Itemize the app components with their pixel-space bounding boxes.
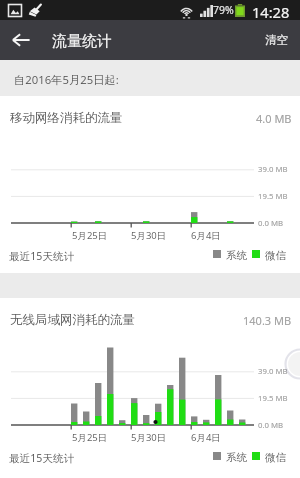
staticText: 微信 [265,249,287,262]
staticText: 流量统计 [52,32,112,51]
staticText: 自2016年5月25日起: [14,72,119,87]
staticText: 微信 [265,451,287,464]
staticText: 6月4日 [191,431,221,444]
staticText: 0.0 MB [258,420,284,431]
staticText: 5月25日 [72,431,108,444]
staticText: 4.0 MB [256,111,292,126]
staticText: 39.0 MB [258,164,288,175]
staticText: 5月30日 [131,431,167,444]
staticText: 39.0 MB [258,366,288,377]
staticText: 清空 [265,33,289,48]
staticText: 14:28 [252,2,290,22]
button[interactable]: Back [0,20,42,60]
staticText: 无线局域网消耗的流量 [10,312,135,328]
staticText: 最近15天统计 [9,451,75,465]
staticText: 5月25日 [72,229,108,242]
staticText: 移动网络消耗的流量 [10,110,123,126]
staticText: 79% [213,3,234,17]
staticText: 系统 [226,451,248,464]
staticText: 19.5 MB [258,191,288,202]
staticText: 0.0 MB [258,218,284,229]
staticText: 6月4日 [191,229,221,242]
staticText: 5月30日 [131,229,167,242]
button[interactable]: 清空 [254,20,300,60]
staticText: 140.3 MB [243,313,292,328]
staticText: 最近15天统计 [9,249,75,263]
staticText: 19.5 MB [258,393,288,404]
staticText: 系统 [226,249,248,262]
